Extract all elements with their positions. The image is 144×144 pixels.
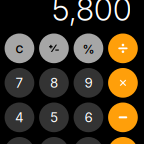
button[interactable]: 3 [74, 137, 103, 144]
button[interactable]: 7 [5, 68, 34, 98]
staticText: % [82, 42, 94, 57]
staticText: C [15, 43, 23, 56]
button[interactable]: 9 [74, 68, 103, 98]
staticText: 8 [50, 75, 58, 91]
button[interactable]: Divide [108, 33, 138, 63]
button[interactable]: Plus minus [39, 33, 69, 63]
staticText: 9 [84, 75, 92, 91]
button[interactable]: Minus [108, 102, 138, 132]
staticText: 6 [84, 109, 92, 125]
button[interactable]: + [108, 137, 138, 144]
staticText: 7 [15, 75, 23, 91]
button[interactable]: 8 [39, 68, 69, 98]
button[interactable]: 5 [39, 102, 69, 132]
staticText: 5,800 [52, 0, 132, 28]
button[interactable]: 6 [74, 102, 103, 132]
button[interactable]: 1 [5, 137, 34, 144]
button[interactable]: 2 [39, 137, 69, 144]
staticText: 5 [50, 109, 58, 125]
button[interactable]: % [74, 33, 103, 63]
button[interactable]: 4 [5, 102, 34, 132]
button[interactable]: C [5, 33, 34, 63]
button[interactable]: Multiply [108, 68, 138, 98]
staticText: 4 [15, 109, 24, 125]
